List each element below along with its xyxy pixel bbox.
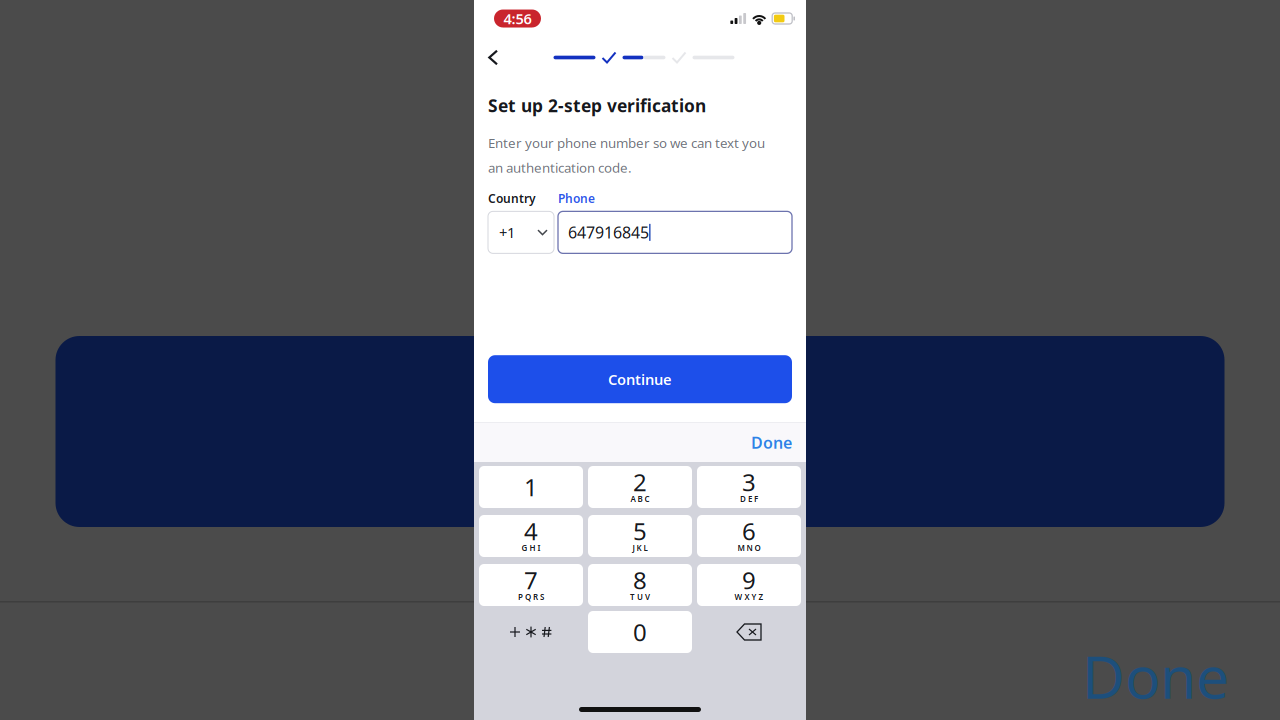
- staticText: G H I: [521, 543, 540, 553]
- staticText: 0: [633, 616, 647, 648]
- button[interactable]: Done: [737, 423, 806, 462]
- staticText: T U V: [630, 592, 650, 602]
- staticText: Enter your phone number so we can text y…: [488, 134, 765, 152]
- staticText: M N O: [737, 543, 760, 553]
- staticText: Set up 2-step verification: [488, 94, 706, 117]
- button[interactable]: 0: [588, 611, 692, 653]
- button[interactable]: Symbols: [479, 611, 583, 653]
- button[interactable]: +1: [488, 211, 554, 253]
- staticText: 9: [742, 564, 756, 596]
- button[interactable]: 9: [697, 564, 801, 606]
- button[interactable]: 4: [479, 515, 583, 557]
- button[interactable]: Back: [488, 42, 520, 72]
- staticText: Phone: [558, 190, 595, 206]
- staticText: +1: [499, 223, 515, 242]
- staticText: J K L: [632, 543, 647, 553]
- staticText: Continue: [608, 369, 672, 389]
- button[interactable]: 5: [588, 515, 692, 557]
- button[interactable]: Continue: [488, 355, 792, 403]
- button[interactable]: 3: [697, 466, 801, 508]
- staticText: 1: [524, 471, 538, 503]
- staticText: 8: [633, 564, 647, 596]
- button[interactable]: 8: [588, 564, 692, 606]
- button[interactable]: 647916845: [558, 211, 792, 253]
- staticText: Done: [1082, 637, 1229, 715]
- button[interactable]: 7: [479, 564, 583, 606]
- staticText: Country: [488, 190, 536, 206]
- staticText: D E F: [740, 494, 758, 504]
- staticText: A B C: [630, 494, 649, 504]
- staticText: an authentication code.: [488, 159, 632, 176]
- staticText: 6: [742, 515, 756, 547]
- button[interactable]: 2: [588, 466, 692, 508]
- staticText: 5: [633, 515, 647, 547]
- staticText: 2: [633, 466, 647, 498]
- staticText: P Q R S: [518, 592, 544, 602]
- staticText: 647916845: [568, 222, 649, 243]
- button[interactable]: Delete: [697, 611, 801, 653]
- staticText: Done: [751, 432, 792, 453]
- staticText: 4: [524, 515, 538, 547]
- staticText: 4:56: [503, 9, 531, 28]
- button[interactable]: 1: [479, 466, 583, 508]
- button[interactable]: 6: [697, 515, 801, 557]
- staticText: 7: [524, 564, 538, 596]
- staticText: W X Y Z: [734, 592, 763, 602]
- staticText: 3: [742, 466, 756, 498]
